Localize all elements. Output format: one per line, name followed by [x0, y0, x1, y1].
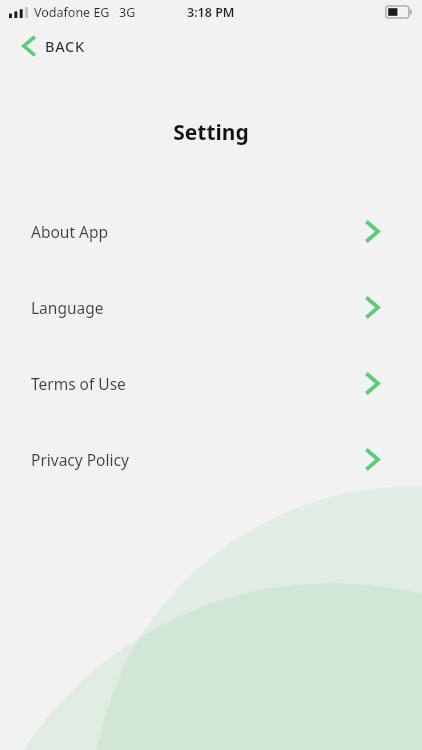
button[interactable]: About App [0, 209, 422, 253]
staticText: Setting [0, 118, 422, 147]
staticText: About App [31, 221, 108, 242]
button[interactable]: Language [0, 285, 422, 329]
staticText: Language [31, 297, 104, 318]
button[interactable]: Privacy Policy [0, 437, 422, 481]
button[interactable]: BACK [14, 30, 93, 62]
staticText: Terms of Use [31, 373, 126, 394]
staticText: Privacy Policy [31, 449, 129, 470]
staticText: Vodafone EG [34, 4, 110, 21]
staticText: BACK [45, 36, 85, 56]
staticText: 3G [119, 4, 136, 21]
button[interactable]: Terms of Use [0, 361, 422, 405]
staticText: 3:18 PM [187, 4, 235, 21]
